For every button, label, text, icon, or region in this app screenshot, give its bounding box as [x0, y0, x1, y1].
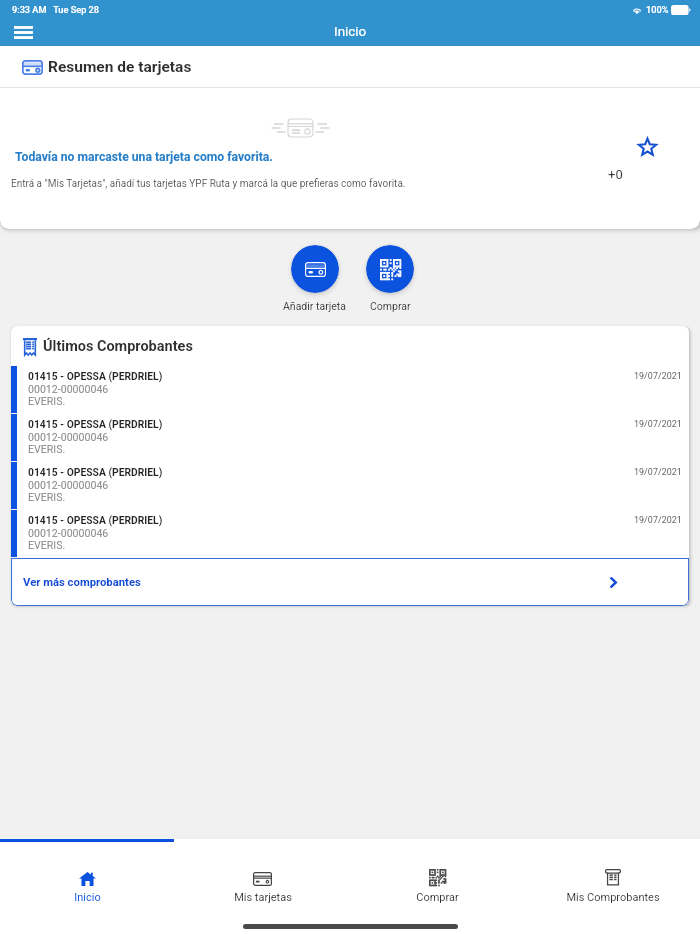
button[interactable]: 01415 - OPESSA (PERDRIEL): [11, 462, 689, 510]
staticText: 01415 - OPESSA (PERDRIEL): [28, 466, 163, 478]
staticText: 19/07/2021: [634, 371, 682, 382]
staticText: 00012-00000046: [28, 383, 109, 395]
button[interactable]: Marcar como favorita: [630, 130, 664, 164]
staticText: Inicio: [74, 891, 101, 904]
button[interactable]: 01415 - OPESSA (PERDRIEL): [11, 366, 689, 414]
staticText: Añadir tarjeta: [283, 300, 346, 312]
staticText: 00012-00000046: [28, 479, 109, 491]
staticText: Todavía no marcaste una tarjeta como fav…: [15, 150, 273, 164]
staticText: 01415 - OPESSA (PERDRIEL): [28, 514, 163, 526]
button[interactable]: Mis tarjetas: [175, 843, 350, 904]
staticText: +0: [608, 167, 623, 182]
button[interactable]: 01415 - OPESSA (PERDRIEL): [11, 510, 689, 558]
staticText: 100%: [646, 4, 669, 15]
staticText: Comprar: [416, 891, 459, 904]
staticText: 19/07/2021: [634, 515, 682, 526]
staticText: 00012-00000046: [28, 431, 109, 443]
button[interactable]: Inicio: [0, 843, 175, 904]
staticText: EVERIS.: [28, 539, 66, 551]
staticText: Resumen de tarjetas: [48, 58, 192, 76]
staticText: 00012-00000046: [28, 527, 109, 539]
staticText: Mis Comprobantes: [566, 891, 660, 904]
button[interactable]: Comprar: [366, 245, 414, 312]
button[interactable]: 01415 - OPESSA (PERDRIEL): [11, 414, 689, 462]
staticText: EVERIS.: [28, 395, 66, 407]
staticText: Últimos Comprobantes: [43, 338, 193, 355]
staticText: 19/07/2021: [634, 467, 682, 478]
staticText: Entrá a "Mis Tarjetas", añadí tus tarjet…: [11, 178, 406, 190]
staticText: Inicio: [334, 24, 367, 40]
button[interactable]: Comprar: [350, 843, 525, 904]
staticText: EVERIS.: [28, 443, 66, 455]
button[interactable]: Añadir tarjeta: [283, 245, 346, 312]
staticText: 01415 - OPESSA (PERDRIEL): [28, 370, 163, 382]
staticText: 9:33 AM Tue Sep 28: [12, 4, 100, 15]
staticText: Mis tarjetas: [234, 891, 292, 904]
staticText: Ver más comprobantes: [23, 576, 141, 589]
staticText: Comprar: [370, 300, 411, 312]
staticText: 01415 - OPESSA (PERDRIEL): [28, 418, 163, 430]
button[interactable]: Ver más comprobantes: [11, 558, 689, 606]
button[interactable]: Mis Comprobantes: [525, 843, 700, 904]
staticText: EVERIS.: [28, 491, 66, 503]
button[interactable]: Menu: [4, 18, 42, 46]
staticText: 19/07/2021: [634, 419, 682, 430]
